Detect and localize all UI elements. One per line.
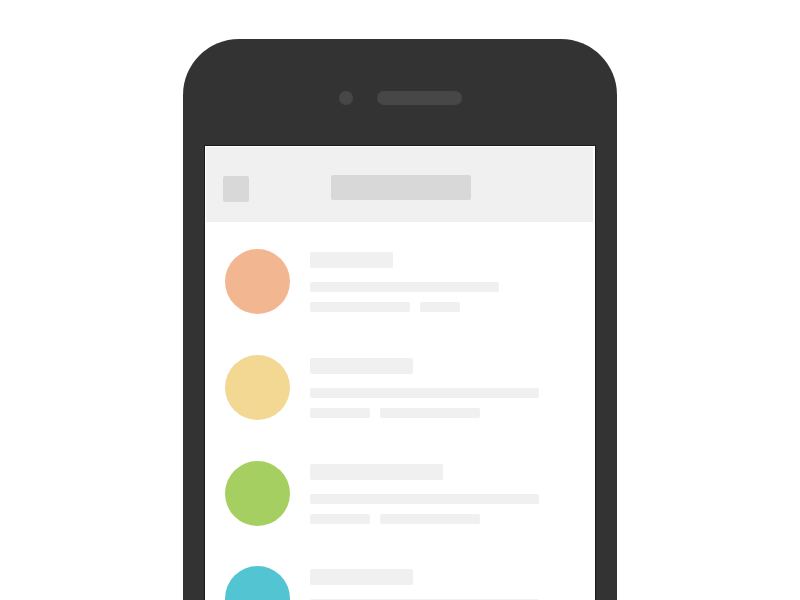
button[interactable]: List item 4: [205, 539, 595, 600]
button[interactable]: List item 1: [205, 222, 595, 328]
button[interactable]: List item 2: [205, 328, 595, 434]
button[interactable]: List item 3: [205, 434, 595, 540]
